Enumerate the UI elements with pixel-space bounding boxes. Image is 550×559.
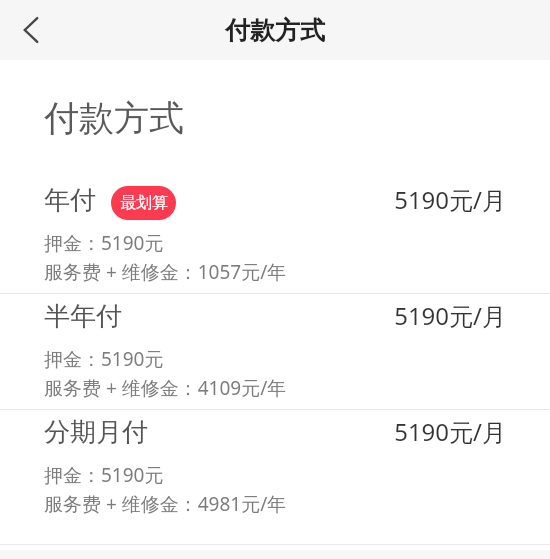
staticText: 押金：5190元 (44, 462, 164, 488)
button[interactable]: 年付 (0, 177, 550, 293)
button[interactable]: Back (0, 0, 62, 60)
button[interactable]: 分期月付 (0, 409, 550, 525)
staticText: 年付 (44, 184, 96, 217)
staticText: 最划算 (120, 193, 168, 213)
staticText: 服务费 + 维修金：4981元/年 (44, 491, 287, 517)
staticText: 5190元/月 (0, 183, 506, 216)
staticText: 5190元/月 (0, 415, 506, 448)
staticText: 服务费 + 维修金：4109元/年 (44, 375, 287, 401)
staticText: 押金：5190元 (44, 230, 164, 256)
staticText: 分期月付 (44, 416, 148, 449)
staticText: 半年付 (44, 300, 122, 333)
staticText: 押金：5190元 (44, 346, 164, 372)
staticText: 5190元/月 (0, 299, 506, 332)
staticText: 付款方式 (225, 15, 325, 46)
button[interactable]: 最划算 (111, 186, 176, 220)
staticText: 付款方式 (44, 96, 184, 140)
button[interactable]: 半年付 (0, 293, 550, 409)
staticText: 服务费 + 维修金：1057元/年 (44, 259, 287, 285)
